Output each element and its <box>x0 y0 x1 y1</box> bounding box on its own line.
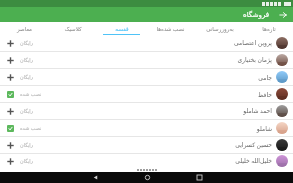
staticText: رایگان <box>20 158 34 164</box>
staticText: خلیل‌الله خلیلی <box>235 157 272 165</box>
staticText: پروین اعتصامی <box>234 39 272 47</box>
other: Add <box>5 140 16 151</box>
staticText: رایگان <box>20 142 34 148</box>
staticText: حسین کسرایی <box>235 141 272 149</box>
button[interactable]: Recents <box>184 172 214 183</box>
other: Add <box>5 72 16 83</box>
staticText: پژمان بختیاری <box>237 56 272 64</box>
staticText: نصب شده‌ها <box>156 25 185 32</box>
staticText: به‌روزرسانی <box>206 26 234 32</box>
button[interactable]: Add <box>0 35 293 51</box>
other: Add <box>5 106 16 117</box>
staticText: فروشگاه <box>243 11 270 19</box>
button[interactable]: Add <box>0 69 293 85</box>
staticText: تازه‌ها <box>262 26 276 32</box>
staticText: رایگان <box>20 57 34 63</box>
other: Add <box>5 55 16 66</box>
other: Installed <box>5 89 16 100</box>
staticText: شاملو <box>256 125 272 132</box>
staticText: نصب شده <box>20 91 42 98</box>
staticText: جامی <box>258 74 272 81</box>
button[interactable]: نصب شده‌ها <box>146 22 195 35</box>
staticText: رایگان <box>20 40 34 46</box>
other: Installed <box>5 123 16 134</box>
button[interactable]: قفسه <box>97 22 146 35</box>
button[interactable]: Home <box>132 172 162 183</box>
button[interactable]: Installed <box>0 120 293 136</box>
button[interactable]: Add <box>0 154 293 168</box>
other: Add <box>5 156 16 167</box>
staticText: رایگان <box>20 74 34 80</box>
button[interactable]: Back <box>80 172 110 183</box>
button[interactable]: Add <box>0 52 293 68</box>
button[interactable]: تازه‌ها <box>244 22 293 35</box>
staticText: احمد شاملو <box>243 107 272 115</box>
button[interactable]: Add <box>0 137 293 153</box>
staticText: کلاسیک <box>64 26 82 32</box>
button[interactable]: معاصر <box>0 22 48 35</box>
staticText: حافظ <box>257 91 272 98</box>
staticText: نصب شده <box>20 125 42 132</box>
button[interactable]: Installed <box>0 86 293 102</box>
button[interactable]: به‌روزرسانی <box>195 22 244 35</box>
button[interactable]: Back <box>275 7 290 22</box>
other: Add <box>5 38 16 49</box>
staticText: رایگان <box>20 108 34 114</box>
button[interactable]: Add <box>0 103 293 119</box>
staticText: معاصر <box>17 26 32 32</box>
staticText: قفسه <box>115 26 129 32</box>
button[interactable]: کلاسیک <box>48 22 97 35</box>
